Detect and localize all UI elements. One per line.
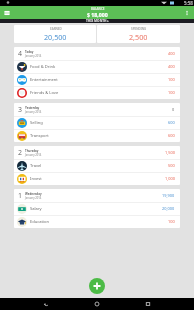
staticText: 500 xyxy=(168,163,175,168)
staticText: $ 18,000 xyxy=(87,11,108,18)
staticText: 2,500 xyxy=(129,32,148,42)
staticText: 20,000 xyxy=(162,206,175,211)
staticText: 400 xyxy=(168,51,175,56)
staticText: Food & Drink xyxy=(30,64,56,70)
staticText: 2 xyxy=(18,148,23,158)
staticText: Invest xyxy=(30,176,42,182)
staticText: SPENDING xyxy=(131,27,147,31)
staticText: 5:58 xyxy=(184,0,193,6)
button[interactable]: Menu xyxy=(2,8,12,18)
staticText: Yesterday xyxy=(25,106,40,110)
staticText: 600 xyxy=(168,133,175,138)
staticText: 4 xyxy=(18,49,23,59)
staticText: 100 xyxy=(168,90,175,95)
staticText: Friends & Love xyxy=(30,90,59,96)
button[interactable]: EARNED xyxy=(14,25,96,43)
button[interactable]: Entertainment xyxy=(17,73,175,86)
staticText: Entertainment xyxy=(30,77,58,83)
staticText: 0 xyxy=(172,107,175,112)
button[interactable]: Selling xyxy=(17,116,175,129)
staticText: 100 xyxy=(168,219,175,224)
staticText: 3 xyxy=(18,105,23,115)
button[interactable]: More options xyxy=(182,8,192,18)
button[interactable]: 3 xyxy=(18,103,175,116)
staticText: 100 xyxy=(168,77,175,82)
staticText: January 2014 xyxy=(25,153,42,157)
button[interactable]: SPENDING xyxy=(97,25,180,43)
button[interactable]: Add transaction xyxy=(89,278,105,294)
button[interactable]: Back xyxy=(41,299,51,309)
staticText: 600 xyxy=(168,120,175,125)
staticText: January 2014 xyxy=(25,196,42,200)
button[interactable]: Food & Drink xyxy=(17,60,175,73)
staticText: January 2014 xyxy=(25,110,42,114)
staticText: Education xyxy=(30,219,50,225)
staticText: Wednesday xyxy=(25,192,42,196)
button[interactable]: THIS MONTH ▸ xyxy=(0,19,194,23)
button[interactable]: Travel xyxy=(17,159,175,172)
staticText: 1,000 xyxy=(165,176,175,181)
staticText: Today xyxy=(25,50,34,54)
button[interactable]: Education xyxy=(17,215,175,228)
staticText: 1,500 xyxy=(165,150,175,155)
button[interactable]: 4 xyxy=(18,47,175,60)
staticText: Travel xyxy=(30,163,42,169)
button[interactable]: 1 xyxy=(18,189,175,202)
staticText: 20,500 xyxy=(44,32,67,42)
staticText: EARNED xyxy=(50,27,62,31)
staticText: January 2014 xyxy=(25,54,42,58)
staticText: Transport xyxy=(30,133,49,139)
button[interactable]: Invest xyxy=(17,172,175,185)
staticText: 400 xyxy=(168,64,175,69)
staticText: BALANCE xyxy=(91,7,105,11)
button[interactable]: Transport xyxy=(17,129,175,142)
staticText: THIS MONTH ▸ xyxy=(86,19,109,23)
staticText: Selling xyxy=(30,120,43,126)
staticText: 19,900 xyxy=(162,193,175,198)
staticText: Thursday xyxy=(25,149,39,153)
button[interactable]: Recents xyxy=(143,299,153,309)
staticText: 1 xyxy=(18,191,23,201)
button[interactable]: 2 xyxy=(18,146,175,159)
button[interactable]: Salary xyxy=(17,202,175,215)
button[interactable]: Home xyxy=(92,299,102,309)
staticText: Salary xyxy=(30,206,42,212)
button[interactable]: Friends & Love xyxy=(17,86,175,99)
